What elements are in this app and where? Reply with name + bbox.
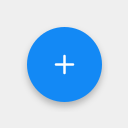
button[interactable]: Add xyxy=(26,26,101,101)
